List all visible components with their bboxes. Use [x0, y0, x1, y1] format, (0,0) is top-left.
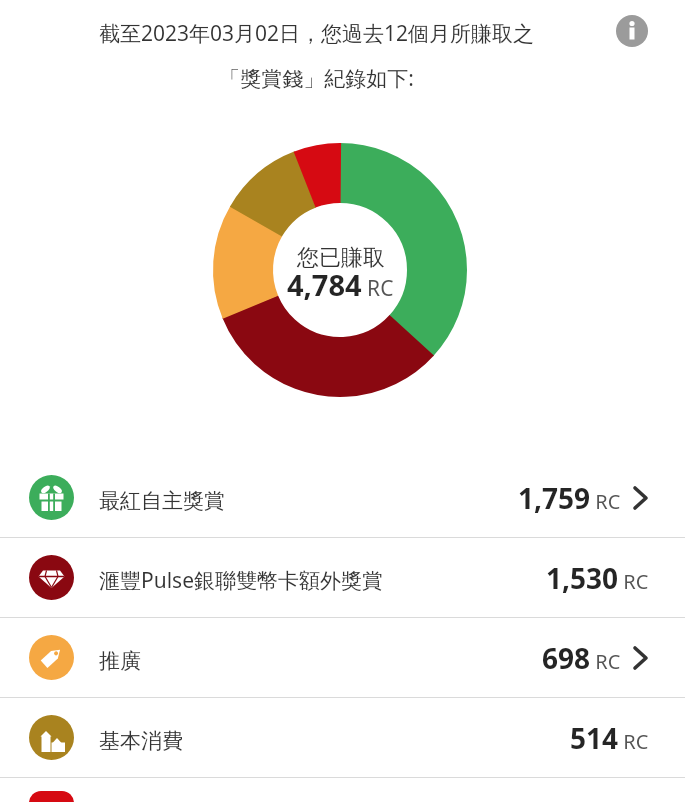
button[interactable] [616, 15, 648, 47]
button[interactable]: 最紅自主獎賞 [0, 458, 685, 537]
button[interactable]: 滙豐Pulse銀聯雙幣卡額外獎賞 [0, 538, 685, 617]
button[interactable]: 推廣 [0, 618, 685, 697]
staticText: 基本消費 [99, 728, 183, 754]
staticText: 「獎賞錢」紀錄如下: [0, 64, 659, 93]
staticText: 514 RC [570, 719, 649, 757]
staticText: 最紅自主獎賞 [99, 488, 225, 514]
staticText: 滙豐Pulse銀聯雙幣卡額外獎賞 [99, 566, 384, 595]
staticText: 4,784 RC [287, 265, 394, 304]
staticText: 您已賺取 [297, 244, 385, 272]
staticText: 1,530 RC [546, 559, 649, 597]
button[interactable]: 基本消費 [0, 698, 685, 777]
staticText: 1,759 RC [518, 479, 621, 517]
staticText: 截至2023年03月02日，您過去12個月所賺取之 [0, 19, 659, 48]
staticText: 推廣 [99, 648, 141, 674]
staticText: 698 RC [542, 639, 621, 677]
